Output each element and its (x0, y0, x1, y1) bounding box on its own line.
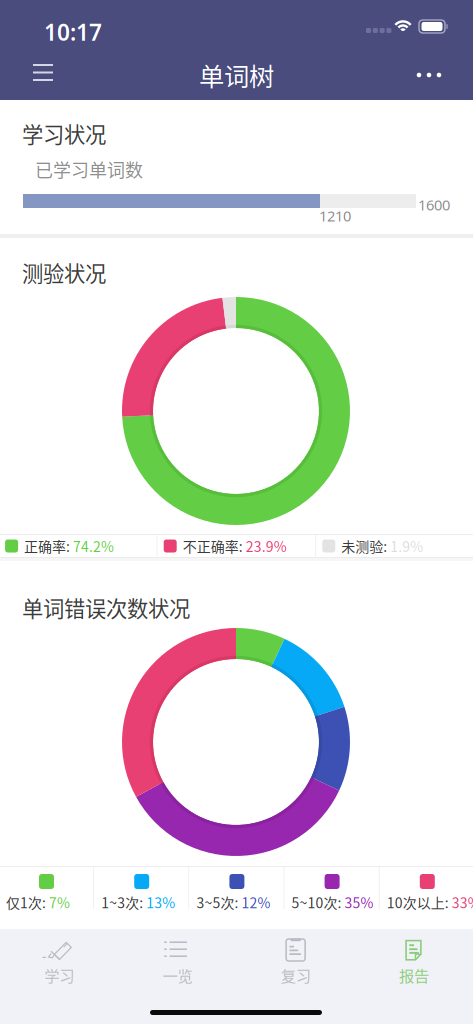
staticText: 复习 (281, 964, 311, 986)
staticText: 单词错误次数状况 (22, 592, 190, 623)
staticText: 仅1次: (6, 892, 46, 912)
button[interactable]: Menu (20, 51, 66, 95)
staticText: 学习 (44, 964, 74, 986)
staticText: 测验状况 (22, 257, 106, 288)
staticText: 5~10次: (292, 892, 342, 912)
staticText: 未测验: (341, 536, 387, 556)
button[interactable]: 学习 (0, 939, 118, 991)
staticText: 正确率: (24, 536, 70, 556)
staticText: 7% (49, 892, 70, 912)
staticText: 报告 (399, 964, 429, 986)
staticText: 35% (345, 892, 374, 912)
button[interactable]: 复习 (236, 939, 355, 991)
staticText: 一览 (162, 964, 192, 986)
staticText: 33% (452, 892, 473, 912)
staticText: 单词树 (199, 57, 274, 93)
staticText: 1.9% (390, 536, 423, 556)
staticText: 10:17 (44, 17, 102, 47)
staticText: 不正确率: (183, 536, 243, 556)
staticText: 13% (146, 892, 175, 912)
staticText: 1210 (319, 206, 351, 225)
button[interactable]: 报告 (355, 939, 473, 991)
button[interactable]: More options (406, 53, 452, 97)
staticText: 1600 (418, 195, 450, 214)
staticText: 已学习单词数 (35, 156, 143, 182)
staticText: 3~5次: (196, 892, 238, 912)
staticText: 74.2% (73, 536, 114, 556)
staticText: 23.9% (246, 536, 287, 556)
button[interactable]: 一览 (118, 939, 236, 991)
staticText: 10次以上: (387, 892, 449, 912)
staticText: 学习状况 (22, 118, 106, 149)
staticText: 12% (241, 892, 270, 912)
staticText: 1~3次: (101, 892, 143, 912)
